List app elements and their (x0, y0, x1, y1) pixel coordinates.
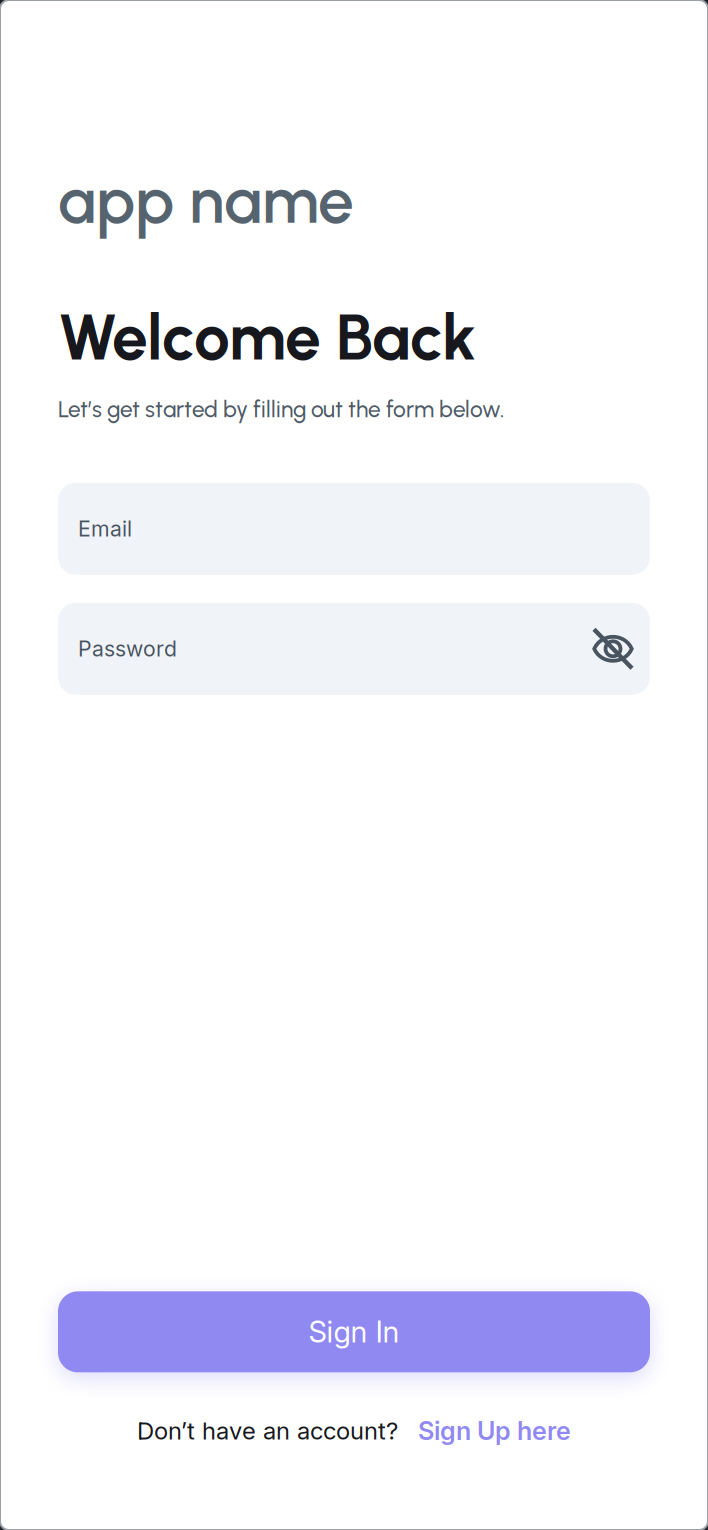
staticText: Sign In (308, 1314, 399, 1350)
staticText: Welcome Back (58, 299, 476, 376)
staticText: Let’s get started by filling out the for… (58, 396, 504, 423)
button[interactable]: Sign In (58, 1291, 650, 1372)
staticText: Sign Up here (418, 1415, 571, 1446)
staticText: app name (58, 162, 354, 239)
staticText: Don’t have an account? (137, 1416, 398, 1445)
staticText: Password (78, 636, 177, 662)
button[interactable]: Sign Up here (418, 1415, 571, 1446)
staticText: Email (78, 516, 132, 542)
button[interactable]: Email (58, 483, 650, 575)
button[interactable]: Password (58, 603, 650, 695)
